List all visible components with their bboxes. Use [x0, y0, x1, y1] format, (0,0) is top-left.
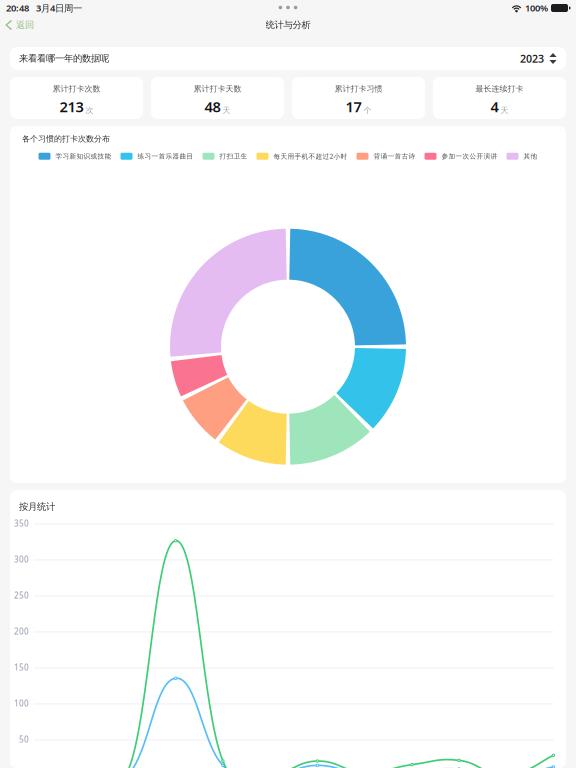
staticText: 250	[14, 590, 29, 601]
staticText: 20:48	[6, 2, 29, 14]
staticText: 来看看哪一年的数据呢	[19, 53, 109, 64]
staticText: 150	[14, 662, 29, 673]
staticText: 天	[222, 105, 230, 115]
staticText: 每天用手机不超过2小时	[273, 152, 347, 161]
staticText: 天	[500, 105, 508, 115]
staticText: 练习一首乐器曲目	[137, 152, 193, 160]
staticText: 累计打卡习惯	[334, 84, 382, 94]
staticText: 3月4日周一	[36, 2, 82, 14]
staticText: 累计打卡次数	[52, 84, 100, 94]
staticText: 统计与分析	[265, 19, 310, 31]
staticText: 200	[14, 626, 29, 637]
staticText: 次	[85, 105, 93, 115]
staticText: 参加一次公开演讲	[441, 152, 497, 160]
staticText: 按月统计	[19, 501, 55, 512]
staticText: 4	[490, 97, 498, 116]
staticText: 350	[14, 518, 29, 529]
button[interactable]: 返回	[0, 16, 39, 34]
staticText: 背诵一首古诗	[373, 152, 415, 160]
staticText: 打扫卫生	[219, 152, 247, 160]
staticText: 返回	[16, 19, 34, 31]
staticText: 100%	[525, 2, 548, 14]
staticText: 17	[345, 97, 361, 116]
staticText: 个	[363, 105, 371, 115]
staticText: 100	[14, 698, 29, 709]
staticText: 300	[14, 554, 29, 565]
button[interactable]: 来看看哪一年的数据呢	[10, 47, 566, 70]
staticText: 213	[59, 97, 83, 116]
staticText: 48	[204, 97, 220, 116]
staticText: 学习新知识或技能	[55, 152, 111, 160]
staticText: 其他	[523, 152, 537, 160]
staticText: 2023	[520, 51, 544, 66]
staticText: 最长连续打卡	[475, 84, 523, 94]
staticText: 各个习惯的打卡次数分布	[22, 134, 110, 144]
staticText: 累计打卡天数	[193, 84, 241, 94]
staticText: 50	[19, 734, 29, 745]
